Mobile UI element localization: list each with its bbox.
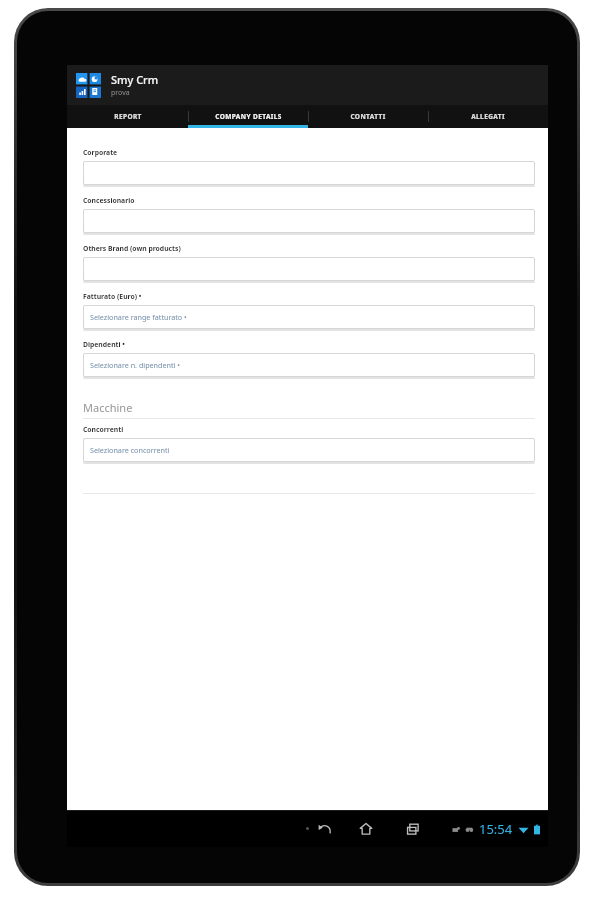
button[interactable]: Selezionare concorrenti [83, 438, 535, 462]
button[interactable]: Selezionare range fatturato • [83, 305, 535, 329]
staticText: 15:54 [479, 820, 513, 838]
staticText: Concorrenti [83, 425, 124, 434]
button[interactable] [83, 209, 535, 233]
button[interactable]: App logo [67, 65, 548, 105]
staticText: COMPANY DETAILS [215, 112, 282, 121]
staticText: Dipendenti • [83, 340, 125, 349]
staticText: prova [111, 88, 130, 98]
staticText: ALLEGATI [471, 112, 505, 121]
button[interactable]: Home [125, 810, 606, 847]
staticText: REPORT [114, 112, 142, 121]
button[interactable]: Recent apps [172, 810, 613, 847]
button[interactable] [83, 161, 535, 185]
button[interactable] [83, 257, 535, 281]
other: App logo [76, 73, 101, 98]
button[interactable]: Back [84, 810, 565, 847]
button[interactable]: COMPANY DETAILS [188, 105, 308, 128]
button[interactable]: 15:54 [452, 820, 540, 838]
staticText: Smy Crm [111, 72, 159, 87]
staticText: Fatturato (Euro) • [83, 292, 142, 301]
staticText: Corporate [83, 148, 118, 157]
staticText: Macchine [83, 400, 133, 415]
staticText: Selezionare concorrenti [90, 445, 170, 455]
staticText: Selezionare n. dipendenti • [90, 360, 181, 370]
button[interactable]: CONTATTI [308, 105, 428, 128]
button[interactable]: Selezionare n. dipendenti • [83, 353, 535, 377]
staticText: Others Brand (own products) [83, 244, 181, 253]
staticText: CONTATTI [350, 112, 386, 121]
button[interactable]: ALLEGATI [428, 105, 548, 128]
staticText: Selezionare range fatturato • [90, 312, 187, 322]
button[interactable]: REPORT [67, 105, 188, 128]
staticText: Concessionario [83, 196, 135, 205]
